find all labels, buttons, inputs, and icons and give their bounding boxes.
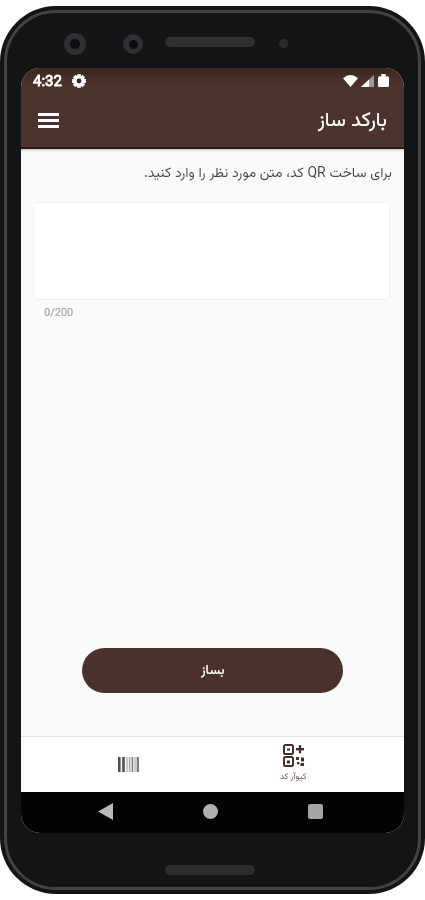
button[interactable] [31,103,65,137]
staticText: بساز [201,660,225,681]
staticText: بارکد ساز [318,105,387,136]
staticText: 0/200 [44,306,74,319]
button[interactable] [21,736,212,792]
button[interactable]: بساز [82,648,343,693]
staticText: برای ساخت QR کد، متن مورد نظر را وارد کن… [143,163,392,185]
staticText: کیوآر کد [280,770,307,783]
button[interactable]: کیوآر کد [212,736,404,792]
staticText: 4:32 [33,72,62,90]
